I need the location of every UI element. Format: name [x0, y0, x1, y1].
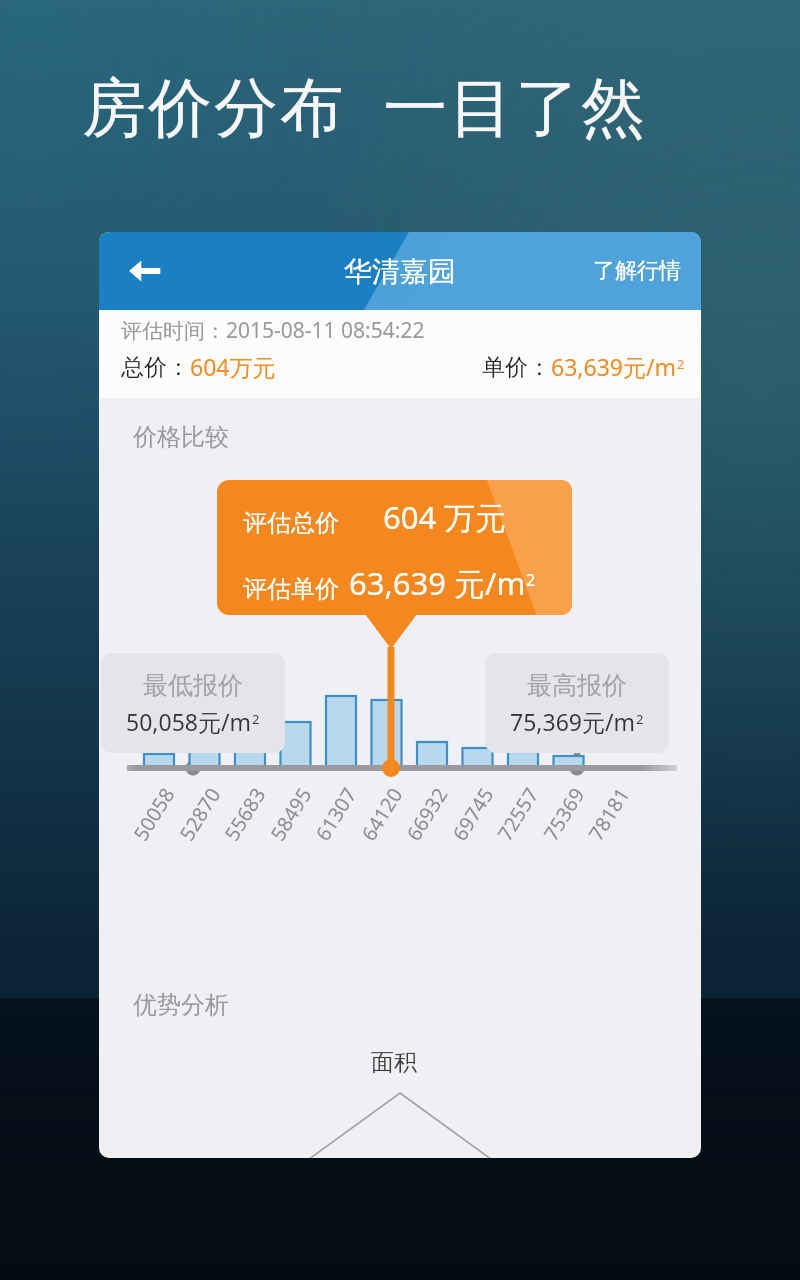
- staticText: 单价：: [482, 353, 551, 382]
- staticText: 房价分布 一目了然: [82, 62, 648, 149]
- staticText: 优势分析: [133, 990, 229, 1020]
- button[interactable]: 最低报价: [101, 653, 285, 753]
- staticText: 78181: [582, 782, 636, 846]
- staticText: 了解行情: [593, 257, 681, 285]
- button[interactable]: 返回: [115, 242, 173, 300]
- staticText: 604 万元: [383, 496, 507, 538]
- staticText: 55683: [218, 782, 272, 846]
- staticText: 2: [636, 710, 644, 728]
- staticText: 2: [526, 569, 536, 591]
- staticText: 总价：: [121, 353, 190, 382]
- staticText: 最高报价: [527, 670, 627, 701]
- staticText: 评估单价: [243, 574, 339, 604]
- staticText: 2: [677, 355, 685, 373]
- staticText: 64120: [355, 782, 409, 846]
- staticText: 72557: [491, 782, 545, 846]
- staticText: 75369: [537, 782, 591, 846]
- staticText: 50058: [127, 782, 181, 846]
- staticText: 58495: [264, 782, 318, 846]
- staticText: 66932: [400, 782, 454, 846]
- button[interactable]: 评估总价: [217, 480, 572, 615]
- staticText: 75,369元/m: [510, 706, 636, 737]
- staticText: 52870: [173, 782, 227, 846]
- staticText: 61307: [309, 782, 363, 846]
- staticText: 最低报价: [143, 670, 243, 701]
- staticText: 评估总价: [243, 508, 339, 538]
- staticText: 63,639元/m: [551, 351, 677, 382]
- button[interactable]: 最高报价: [485, 653, 669, 753]
- staticText: 63,639 元/m: [349, 562, 526, 604]
- button[interactable]: 了解行情: [585, 245, 689, 297]
- staticText: 2: [252, 710, 260, 728]
- staticText: 评估时间：2015-08-11 08:54:22: [121, 316, 425, 345]
- staticText: 华清嘉园: [344, 254, 456, 289]
- staticText: 69745: [446, 782, 500, 846]
- staticText: 604万元: [190, 351, 276, 382]
- staticText: 面积: [371, 1048, 417, 1077]
- staticText: 50,058元/m: [126, 706, 252, 737]
- staticText: 价格比较: [133, 422, 229, 452]
